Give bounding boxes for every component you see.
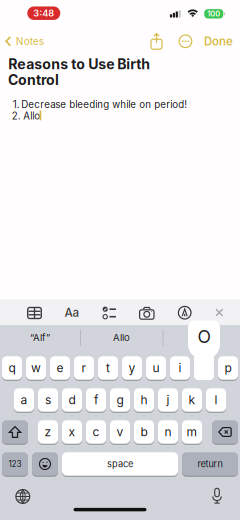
staticText: z	[44, 425, 51, 439]
staticText: h	[140, 393, 147, 407]
button[interactable]: w	[26, 355, 46, 381]
button[interactable]: v	[110, 419, 130, 445]
button[interactable]	[178, 34, 192, 48]
button[interactable]	[139, 307, 154, 319]
staticText: d	[68, 393, 75, 407]
staticText: x	[68, 425, 75, 439]
button[interactable]	[27, 307, 41, 318]
staticText: u	[152, 361, 159, 375]
button[interactable]: m	[182, 419, 202, 445]
button[interactable]: j	[158, 387, 178, 413]
staticText: c	[92, 425, 99, 439]
staticText: 3:48	[33, 8, 54, 19]
staticText: w	[31, 361, 41, 375]
staticText: Control	[8, 71, 59, 88]
button[interactable]: s	[38, 387, 58, 413]
staticText: p	[224, 361, 231, 375]
button[interactable]: t	[98, 355, 118, 381]
staticText: i	[178, 361, 181, 375]
button[interactable]: space	[62, 451, 178, 477]
staticText: m	[186, 425, 197, 439]
staticText: O	[197, 326, 210, 347]
button[interactable]: k	[182, 387, 202, 413]
button[interactable]: h	[134, 387, 154, 413]
button[interactable]: d	[62, 387, 82, 413]
button[interactable]	[212, 419, 238, 445]
staticText: b	[140, 425, 147, 439]
button[interactable]: q	[2, 355, 22, 381]
staticText: f	[94, 393, 98, 407]
staticText: 100	[207, 9, 220, 18]
staticText: n	[164, 425, 171, 439]
button[interactable]	[102, 306, 116, 319]
button[interactable]: n	[158, 419, 178, 445]
staticText: v	[116, 425, 123, 439]
staticText: return	[197, 458, 222, 469]
button[interactable]: 123	[2, 451, 28, 477]
button[interactable]: return	[182, 451, 238, 477]
staticText: space	[107, 458, 133, 469]
staticText: Notes	[16, 35, 44, 47]
button[interactable]: g	[110, 387, 130, 413]
staticText: k	[188, 393, 195, 407]
button[interactable]: Allo	[82, 325, 160, 349]
button[interactable]: l	[206, 387, 226, 413]
button[interactable]: x	[62, 419, 82, 445]
staticText: Reasons to Use Birth	[8, 56, 150, 73]
button[interactable]: b	[134, 419, 154, 445]
button[interactable]: Aa	[64, 305, 79, 320]
staticText: Decrease bleeding while on period!	[21, 98, 187, 110]
staticText: y	[128, 361, 135, 375]
staticText: 123	[8, 459, 21, 469]
button[interactable]: e	[50, 355, 70, 381]
button[interactable]: y	[122, 355, 142, 381]
button[interactable]	[212, 488, 222, 504]
staticText: j	[166, 393, 169, 407]
button[interactable]: z	[38, 419, 58, 445]
button[interactable]: f	[86, 387, 106, 413]
button[interactable]: i	[170, 355, 190, 381]
staticText: Aa	[64, 305, 79, 320]
button[interactable]	[178, 306, 191, 319]
button[interactable]: 3:48	[27, 6, 60, 20]
button[interactable]: u	[146, 355, 166, 381]
staticText: s	[45, 393, 51, 407]
staticText: q	[8, 361, 15, 375]
staticText: 1.	[13, 98, 20, 110]
staticText: g	[116, 393, 123, 407]
staticText: e	[56, 361, 63, 375]
button[interactable]	[2, 419, 28, 445]
staticText: Done	[204, 34, 233, 48]
staticText: “Alf”	[30, 332, 50, 343]
staticText: Allo	[23, 110, 40, 122]
button[interactable]	[148, 32, 164, 49]
staticText: 2.	[12, 110, 21, 122]
button[interactable]: Done	[204, 34, 233, 48]
button[interactable]	[15, 489, 30, 504]
staticText: l	[214, 393, 217, 407]
staticText: t	[106, 361, 110, 375]
staticText: a	[20, 393, 27, 407]
button[interactable]	[215, 309, 223, 316]
button[interactable]: r	[74, 355, 94, 381]
button[interactable]: “Alf”	[1, 325, 79, 349]
button[interactable]: p	[218, 355, 238, 381]
button[interactable]	[32, 451, 58, 477]
button[interactable]: a	[14, 387, 34, 413]
button[interactable]: c	[86, 419, 106, 445]
button[interactable]: Notes	[5, 35, 44, 47]
staticText: r	[81, 361, 86, 375]
staticText: Allo	[113, 332, 130, 343]
